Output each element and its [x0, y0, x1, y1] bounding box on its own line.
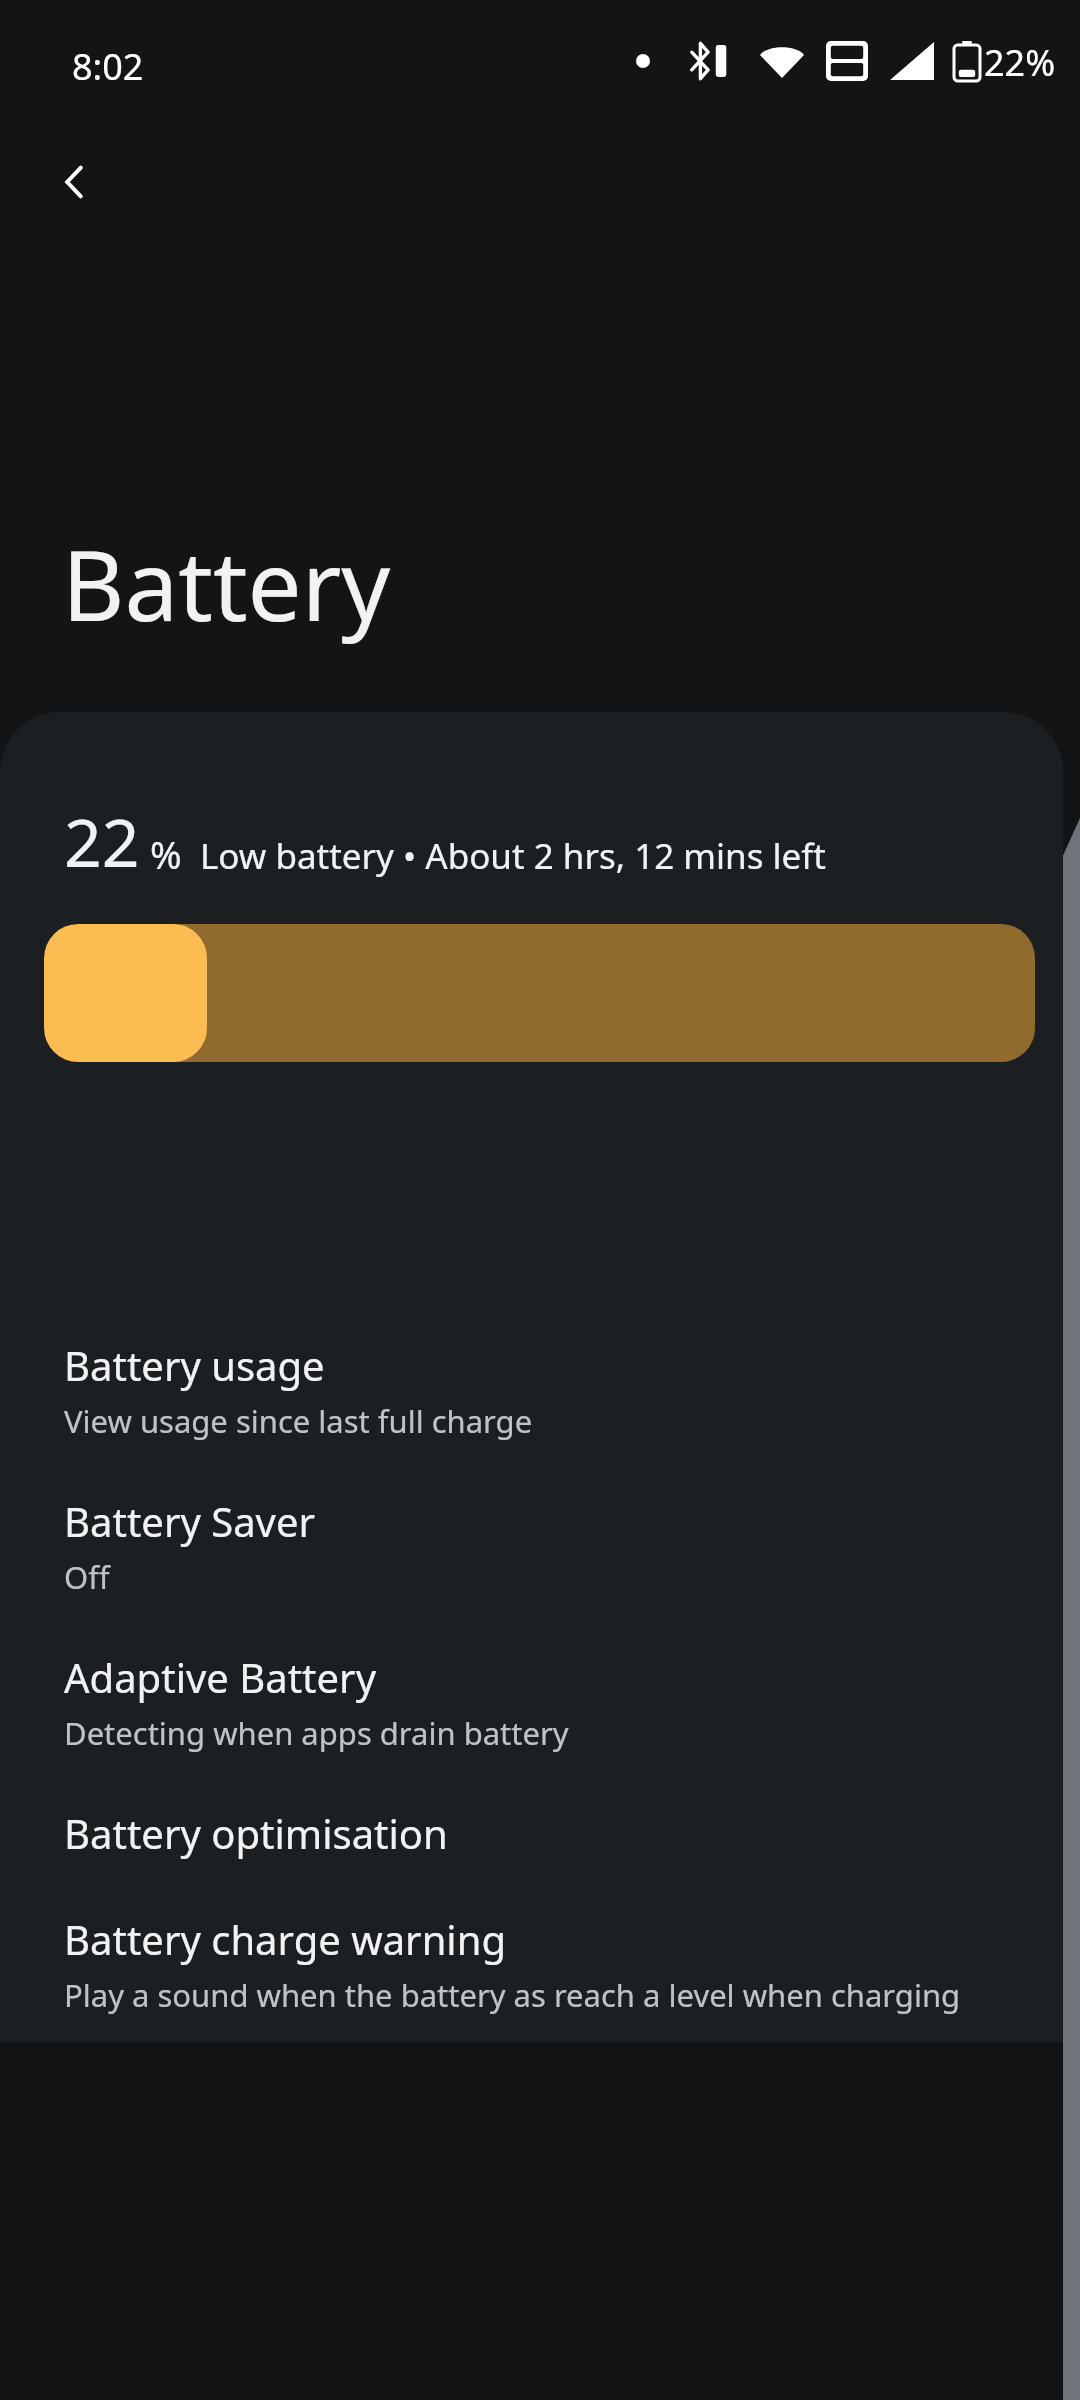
staticText: Battery Saver: [64, 1494, 315, 1548]
staticText: 22: [64, 796, 140, 886]
button[interactable]: Back: [28, 134, 124, 230]
staticText: %: [150, 828, 182, 880]
button[interactable]: Battery usage: [0, 1312, 1063, 1468]
staticText: 22%: [984, 38, 1056, 84]
staticText: 8:02: [72, 42, 144, 91]
button[interactable]: Adaptive Battery: [0, 1624, 1063, 1780]
staticText: Battery usage: [64, 1338, 325, 1392]
staticText: Off: [64, 1556, 110, 1598]
button[interactable]: Battery optimisation: [0, 1780, 1063, 1886]
staticText: Battery: [62, 518, 391, 649]
button[interactable]: Battery charge warning: [0, 1886, 1063, 2042]
staticText: Detecting when apps drain battery: [64, 1712, 569, 1754]
staticText: Battery optimisation: [64, 1806, 448, 1860]
staticText: Low battery • About 2 hrs, 12 mins left: [200, 832, 826, 880]
staticText: Battery charge warning: [64, 1912, 506, 1966]
button[interactable]: Battery Saver: [0, 1468, 1063, 1624]
staticText: Play a sound when the battery as reach a…: [64, 1974, 961, 2016]
staticText: View usage since last full charge: [64, 1400, 533, 1442]
staticText: Adaptive Battery: [64, 1650, 377, 1704]
